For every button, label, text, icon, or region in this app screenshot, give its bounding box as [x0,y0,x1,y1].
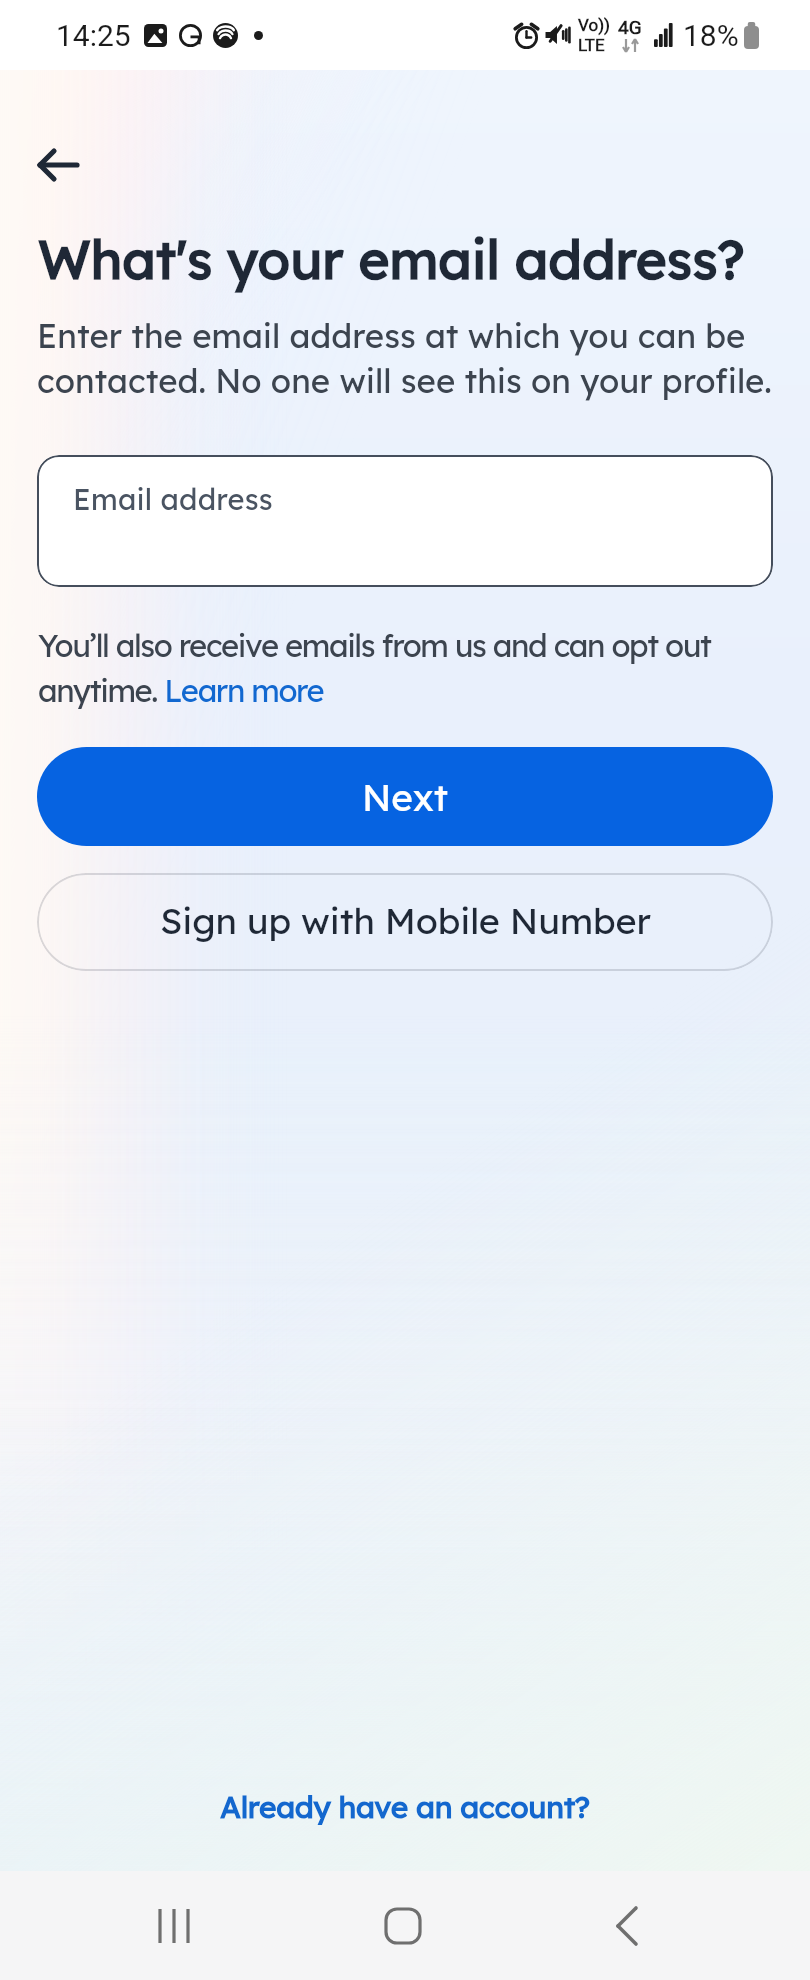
button[interactable]: Sign up with Mobile Number [37,873,773,971]
staticText: What's your email address? [38,226,745,292]
button[interactable]: Home [357,1878,453,1974]
staticText: 14:25 [56,18,131,53]
staticText: Email address [73,481,273,517]
staticText: LTE [578,35,605,55]
staticText: Sign up with Mobile Number [160,898,651,943]
button[interactable]: Next [37,747,773,846]
staticText: Vo)) [578,15,610,35]
staticText: Next [362,774,448,820]
staticText: Already have an account? [220,1788,590,1826]
staticText: You’ll also receive emails from us and c… [38,626,788,710]
button[interactable]: Back [22,129,94,201]
button[interactable]: Email address [37,455,773,587]
button[interactable]: Already have an account? [0,1764,810,1850]
staticText: Enter the email address at which you can… [37,315,810,401]
button[interactable]: Back [584,1878,680,1974]
staticText: 4G [618,16,642,38]
staticText: 18% [683,18,739,53]
button[interactable]: Recents [131,1878,227,1974]
